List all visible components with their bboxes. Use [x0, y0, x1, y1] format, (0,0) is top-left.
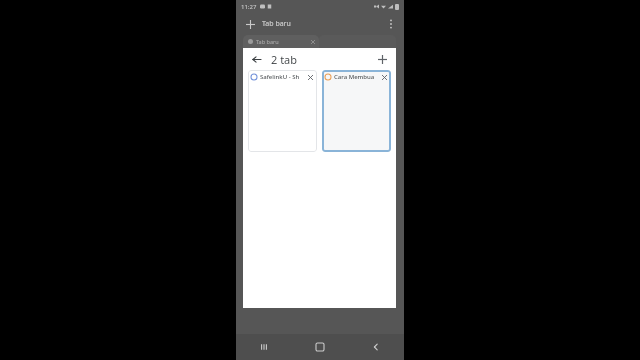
staticText: Tab baru: [262, 19, 291, 29]
button[interactable]: Close tab: [380, 73, 388, 81]
staticText: Cara Membua: [334, 73, 378, 81]
button[interactable]: Cara Membua: [322, 70, 391, 152]
button[interactable]: Home: [292, 334, 348, 360]
button[interactable]: Back: [248, 51, 264, 67]
button[interactable]: Back: [348, 334, 404, 360]
button[interactable]: SafelinkU - Sh: [248, 70, 317, 152]
button[interactable]: Close tab: [306, 73, 314, 81]
button[interactable]: Recents: [236, 334, 292, 360]
staticText: 2 tab: [271, 52, 298, 67]
button[interactable]: Tab baru: [242, 16, 258, 32]
button[interactable]: Tab baru: [243, 35, 319, 48]
button[interactable]: New tab: [373, 50, 391, 68]
staticText: Tab baru: [256, 38, 279, 45]
button[interactable]: More options: [382, 15, 400, 33]
staticText: 11:27: [241, 3, 257, 11]
staticText: SafelinkU - Sh: [260, 73, 304, 81]
